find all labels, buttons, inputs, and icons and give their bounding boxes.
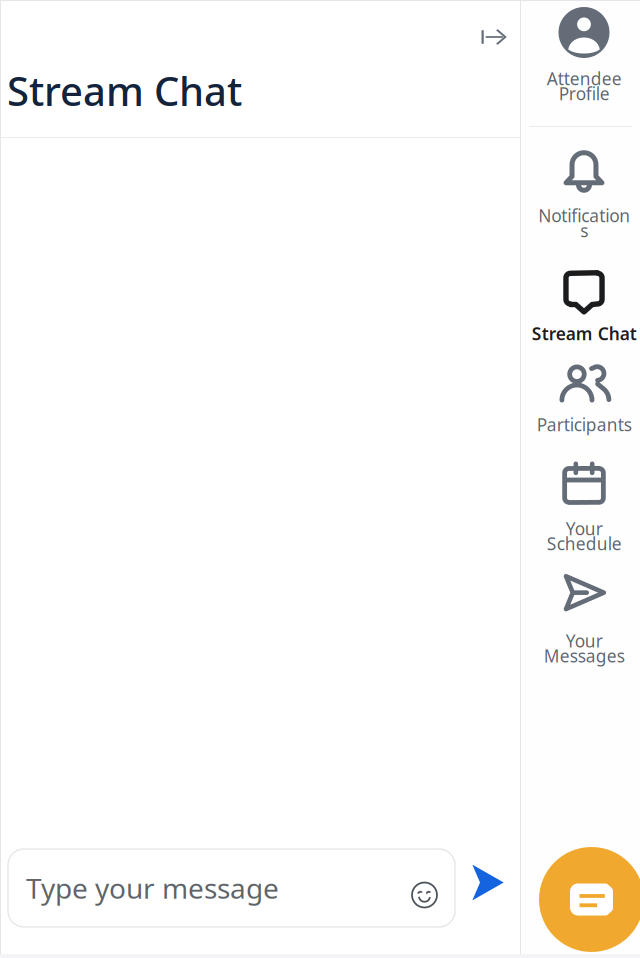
staticText: Type your message: [26, 869, 279, 907]
button[interactable]: New message: [539, 847, 640, 952]
button[interactable]: Stream Chat: [521, 251, 640, 354]
button[interactable]: Attendee Profile: [521, 0, 640, 126]
button[interactable]: Your Schedule: [521, 444, 640, 563]
staticText: Stream Chat: [7, 64, 242, 117]
button[interactable]: Participants: [521, 354, 640, 444]
staticText: Your Schedule: [546, 517, 621, 555]
staticText: Notification s: [538, 204, 630, 242]
button[interactable]: Open chat panel: [469, 0, 521, 51]
staticText: Attendee Profile: [546, 67, 621, 105]
staticText: Your Messages: [543, 629, 624, 667]
staticText: Stream Chat: [531, 322, 636, 345]
staticText: Participants: [536, 413, 631, 436]
button[interactable]: Notifications: [521, 127, 640, 251]
button[interactable]: Send: [455, 849, 521, 926]
button[interactable]: Your Messages: [521, 563, 640, 675]
